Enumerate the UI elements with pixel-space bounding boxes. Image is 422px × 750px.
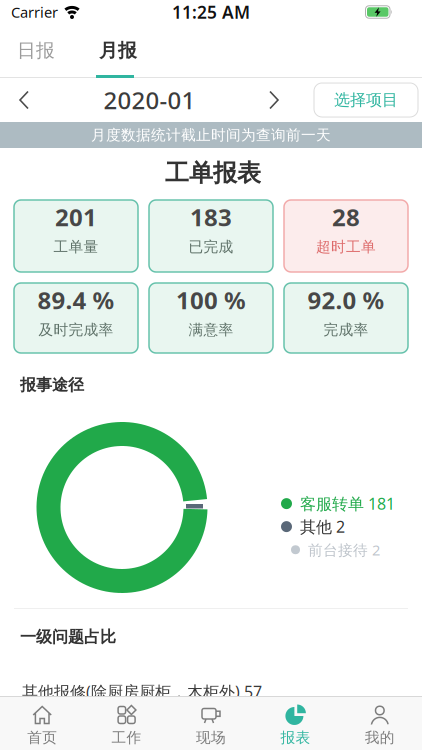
staticText: 已完成 [188,238,233,256]
button[interactable]: 报表 [253,700,338,746]
button[interactable]: Next month [252,78,296,122]
staticText: 89.4 % [37,284,114,316]
staticText: 一级问题占比 [20,627,116,647]
staticText: 日报 [17,39,55,62]
staticText: 工单报表 [165,158,261,188]
button[interactable]: 工作 [84,700,169,746]
staticText: 客服转单 181 [300,493,395,514]
staticText: 28 [332,201,360,233]
staticText: 工作 [112,728,142,746]
button[interactable]: 我的 [338,700,422,746]
staticText: 11:25 AM [172,0,250,23]
staticText: 前台接待 2 [308,540,380,559]
button[interactable]: Previous month [0,78,47,122]
staticText: 其他报修(除厨房厨柜，木柜外) 57 [22,681,262,702]
staticText: 现场 [196,728,226,746]
staticText: 100 % [176,284,246,316]
staticText: 92.0 % [307,284,384,316]
staticText: 月度数据统计截止时间为查询前一天 [91,126,331,144]
staticText: 工单量 [53,238,98,256]
staticText: 其他 2 [300,516,345,537]
staticText: 首页 [27,728,57,746]
staticText: 满意率 [188,321,233,339]
staticText: 选择项目 [334,90,398,110]
staticText: 183 [190,201,232,233]
staticText: 2020-01 [103,84,195,116]
staticText: 报表 [280,728,310,746]
staticText: 我的 [365,728,395,746]
staticText: 月报 [99,39,137,62]
staticText: 超时工单 [316,238,376,256]
staticText: 201 [55,201,97,233]
button[interactable]: 月报 [99,39,137,62]
staticText: Carrier [11,2,58,22]
button[interactable]: 日报 [17,39,55,62]
button[interactable]: 现场 [169,700,253,746]
staticText: 报事途径 [20,375,84,395]
button[interactable]: 选择项目 [314,83,418,117]
button[interactable]: 首页 [0,700,84,746]
staticText: 完成率 [323,321,368,339]
staticText: 及时完成率 [38,321,113,339]
